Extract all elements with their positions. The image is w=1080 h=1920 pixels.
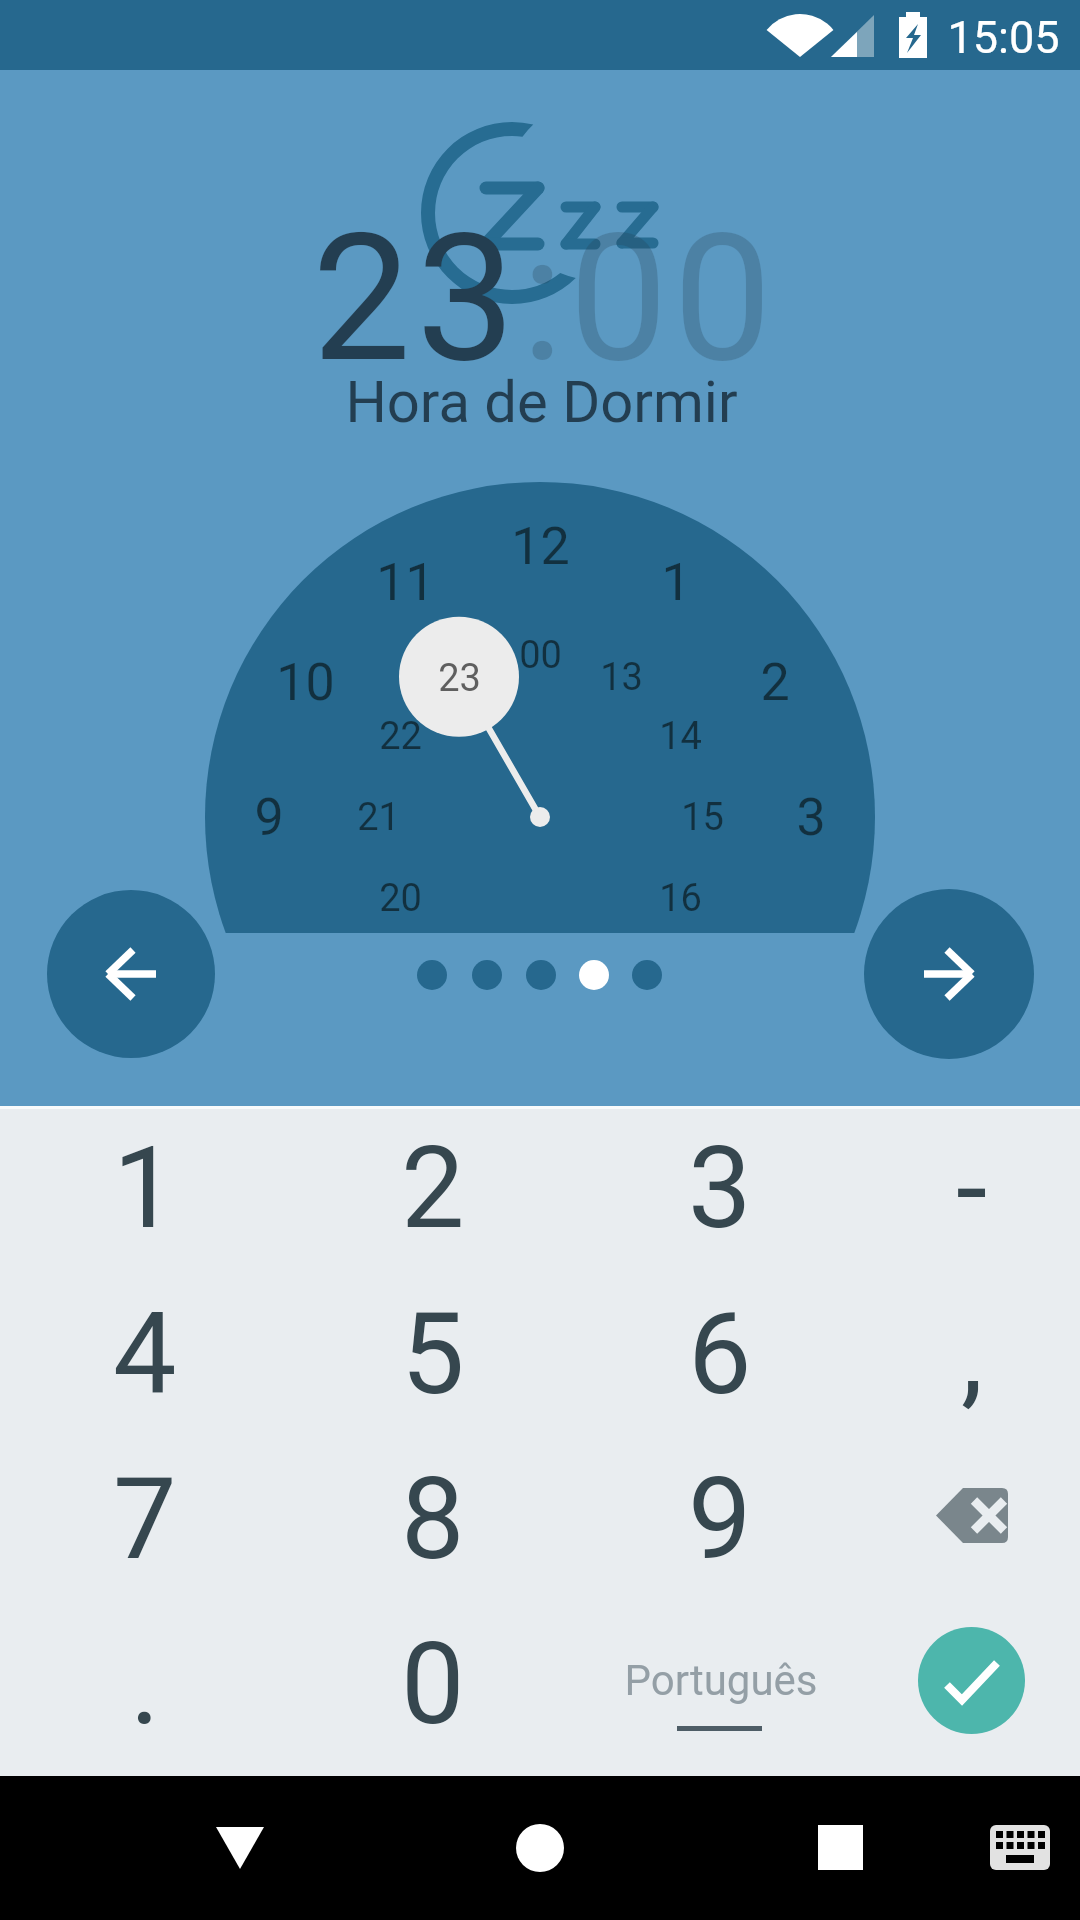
button[interactable]: - <box>837 1105 1080 1271</box>
staticText: 19 <box>438 935 481 980</box>
staticText: . <box>130 1618 160 1750</box>
button[interactable]: Confirm <box>918 1627 1025 1734</box>
staticText: 4 <box>113 1288 177 1420</box>
staticText: 9 <box>254 787 284 848</box>
staticText: 2 <box>760 652 790 713</box>
staticText: Português <box>624 1656 818 1705</box>
button[interactable]: 1 <box>10 1105 280 1271</box>
button[interactable]: 9 <box>585 1436 855 1602</box>
button[interactable]: , <box>837 1271 1080 1437</box>
staticText: 20 <box>379 876 422 921</box>
staticText: 4 <box>760 923 790 984</box>
staticText: 2 <box>401 1122 465 1254</box>
staticText: 14 <box>659 714 702 759</box>
staticText: 0 <box>401 1618 465 1750</box>
staticText: 23 <box>438 656 481 701</box>
staticText: 22 <box>379 714 422 759</box>
button[interactable]: 3 <box>585 1105 855 1271</box>
button[interactable]: 4 <box>10 1271 280 1437</box>
button[interactable]: Backspace <box>837 1434 1080 1600</box>
staticText: 00 <box>519 633 562 678</box>
button[interactable]: Show keyboard <box>960 1776 1080 1920</box>
staticText: , <box>961 1288 984 1420</box>
staticText: 7 <box>113 1453 177 1585</box>
staticText: 8 <box>290 923 320 984</box>
button[interactable]: 7 <box>10 1436 280 1602</box>
staticText: 23 <box>312 196 521 396</box>
staticText: Hora de Dormir <box>345 368 738 436</box>
staticText: 3 <box>796 787 826 848</box>
button[interactable]: Next <box>864 889 1034 1059</box>
button[interactable]: . <box>10 1601 280 1767</box>
staticText: 16 <box>659 876 702 921</box>
button[interactable]: 2 <box>298 1105 568 1271</box>
button[interactable]: Previous <box>47 890 215 1058</box>
staticText: 9 <box>688 1453 752 1585</box>
button[interactable]: Recents <box>780 1776 900 1920</box>
staticText: - <box>956 1122 988 1254</box>
staticText: 21 <box>357 795 400 840</box>
staticText: 6 <box>525 1058 555 1119</box>
button[interactable]: 5 <box>298 1271 568 1437</box>
staticText: 12 <box>511 516 570 577</box>
staticText: 15 <box>681 795 724 840</box>
button[interactable]: Português <box>585 1599 855 1765</box>
staticText: 1 <box>113 1122 177 1254</box>
staticText: 3 <box>688 1122 752 1254</box>
staticText: 13 <box>600 655 643 700</box>
staticText: 5 <box>401 1288 465 1420</box>
staticText: 8 <box>401 1453 465 1585</box>
staticText: :00 <box>521 196 778 396</box>
button[interactable]: 6 <box>585 1271 855 1437</box>
staticText: 10 <box>276 652 335 713</box>
button[interactable]: Home <box>480 1776 600 1920</box>
staticText: 17 <box>600 935 643 980</box>
staticText: 1 <box>661 552 691 613</box>
staticText: 11 <box>376 552 435 613</box>
button[interactable]: Back <box>180 1776 300 1920</box>
staticText: 18 <box>519 957 562 1002</box>
staticText: 15:05 <box>947 11 1060 64</box>
button[interactable]: 8 <box>298 1436 568 1602</box>
button[interactable]: 0 <box>298 1601 568 1767</box>
staticText: 6 <box>688 1288 752 1420</box>
